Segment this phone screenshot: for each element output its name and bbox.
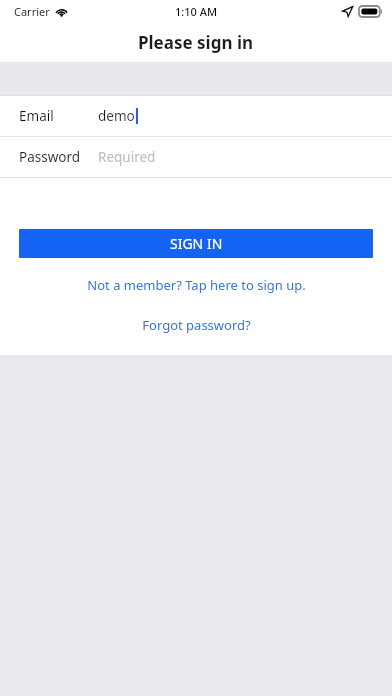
staticText: SIGN IN [170,234,223,253]
button[interactable]: Not a member? Tap here to sign up. [0,271,392,299]
button[interactable]: Forgot password? [0,311,392,339]
staticText: demo [98,107,135,125]
staticText: Please sign in [138,31,254,54]
staticText: 1:10 AM [175,4,218,19]
button[interactable]: Email [0,96,392,136]
staticText: Password [19,148,81,166]
staticText: Carrier [14,4,50,19]
staticText: Required [98,148,156,166]
staticText: Not a member? Tap here to sign up. [87,276,306,294]
staticText: Email [19,107,54,125]
button[interactable]: SIGN IN [19,229,373,258]
button[interactable]: Password [0,137,392,177]
staticText: Forgot password? [142,316,251,334]
